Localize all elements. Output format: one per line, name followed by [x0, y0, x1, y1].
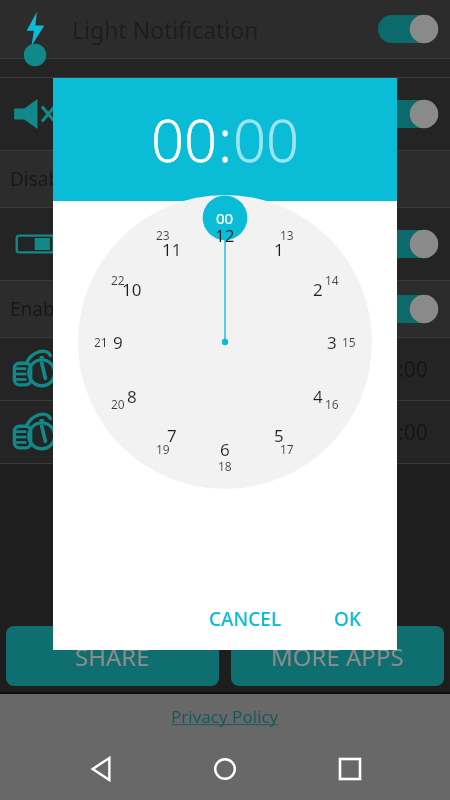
staticText: 3 [327, 331, 337, 354]
button[interactable]: Disable on Silent [0, 151, 450, 207]
staticText: 17 [280, 441, 294, 457]
staticText: 00:00 [374, 355, 428, 384]
staticText: 20 [111, 396, 125, 412]
staticText: 12 [215, 224, 235, 247]
button[interactable]: Privacy Policy [165, 699, 285, 734]
button[interactable]: 00 [233, 100, 300, 179]
staticText: 11 [162, 238, 182, 261]
staticText: CANCEL [209, 606, 282, 632]
staticText: 23 [156, 227, 170, 243]
staticText: 00 [151, 100, 218, 179]
staticText: 18 [218, 458, 232, 474]
staticText: Light Notification [72, 14, 259, 45]
button[interactable]: Home [201, 745, 249, 793]
staticText: 9 [113, 331, 123, 354]
staticText: 16 [325, 396, 339, 412]
button[interactable]: SHARE [6, 626, 219, 686]
staticText: 7 [167, 424, 177, 447]
button[interactable]: 00:00 [0, 401, 450, 463]
staticText: 2 [313, 278, 323, 301]
staticText: 22 [111, 272, 125, 288]
button[interactable]: Light Notification [0, 0, 450, 58]
button[interactable]: % [0, 208, 450, 280]
staticText: 6 [220, 438, 230, 461]
staticText: MORE APPS [271, 640, 404, 673]
staticText: 19 [156, 441, 170, 457]
staticText: 5 [274, 424, 284, 447]
button[interactable]: 00:00 [0, 338, 450, 400]
staticText: 21 [94, 334, 108, 350]
staticText: 14 [325, 272, 339, 288]
staticText: 00:00 [374, 418, 428, 447]
staticText: Disable on Silent [10, 166, 159, 192]
staticText: Enable Schedule [10, 296, 157, 322]
button[interactable]: Toggle [378, 295, 438, 323]
button[interactable]: Toggle [378, 100, 438, 128]
staticText: 15 [342, 334, 356, 350]
staticText: SHARE [75, 640, 150, 673]
staticText: Privacy Policy [171, 705, 279, 728]
button[interactable]: Enable Schedule [0, 281, 450, 337]
staticText: 1 [274, 238, 284, 261]
staticText: OK [334, 606, 361, 632]
staticText: 10 [122, 278, 142, 301]
button[interactable]: CANCEL [195, 598, 296, 640]
button[interactable]: Toggle [0, 78, 450, 150]
button[interactable]: Toggle [378, 230, 438, 258]
staticText: 13 [280, 227, 294, 243]
button[interactable]: Back [77, 745, 125, 793]
staticText: 00 [216, 208, 234, 228]
button[interactable]: Recents [326, 745, 374, 793]
button[interactable]: MORE APPS [231, 626, 444, 686]
button[interactable]: OK [320, 598, 375, 640]
staticText: 8 [127, 385, 137, 408]
staticText: : [218, 100, 233, 179]
staticText: 4 [313, 385, 323, 408]
staticText: 00 [233, 100, 300, 179]
button[interactable]: Toggle [378, 15, 438, 43]
button[interactable]: 00 [151, 100, 218, 179]
